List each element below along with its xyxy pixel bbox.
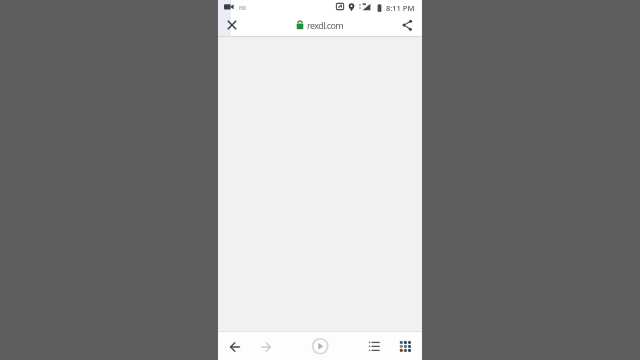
button[interactable]: [228, 340, 242, 354]
button[interactable]: [368, 340, 381, 353]
staticText: HD: [239, 5, 246, 11]
button[interactable]: rexdl.com: [296, 19, 344, 31]
button[interactable]: [400, 18, 415, 33]
button[interactable]: [225, 18, 239, 32]
button[interactable]: [312, 338, 329, 355]
button[interactable]: [395, 336, 412, 353]
staticText: rexdl.com: [307, 19, 344, 31]
staticText: 8:11 PM: [386, 3, 415, 13]
button[interactable]: [259, 340, 273, 354]
